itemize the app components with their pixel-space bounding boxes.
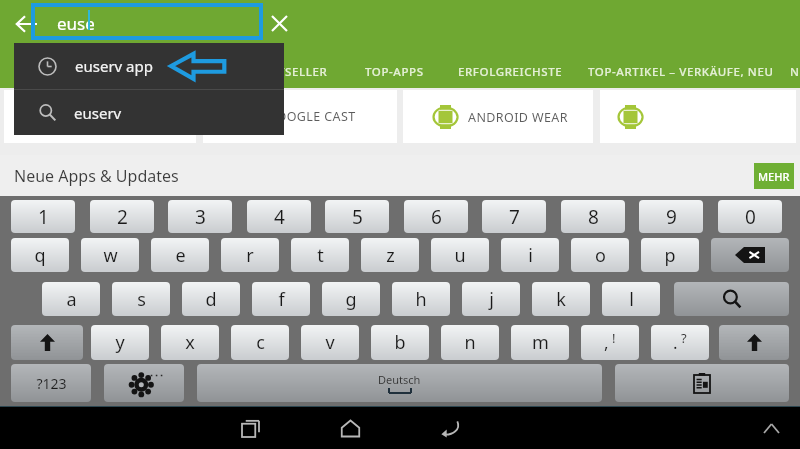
button[interactable]: d bbox=[182, 282, 240, 316]
button[interactable]: 1 bbox=[11, 200, 75, 233]
button[interactable]: 7 bbox=[482, 200, 546, 233]
staticText: ? bbox=[681, 329, 687, 347]
button[interactable]: 5 bbox=[325, 200, 389, 233]
staticText: y bbox=[115, 330, 125, 355]
button[interactable]: Clear search bbox=[262, 6, 296, 40]
button[interactable]: p bbox=[641, 238, 699, 272]
button[interactable]: euserv app bbox=[14, 43, 284, 89]
staticText: w bbox=[103, 243, 118, 268]
button[interactable]: 9 bbox=[639, 200, 703, 233]
button[interactable]: 8 bbox=[561, 200, 625, 233]
staticText: TOP-ARTIKEL – VERKÄUFE, NEU bbox=[588, 64, 774, 80]
staticText: u bbox=[454, 243, 466, 268]
staticText: TOP-APPS bbox=[365, 64, 424, 80]
button[interactable]: Back bbox=[6, 4, 46, 44]
button[interactable]: i bbox=[501, 238, 559, 272]
button[interactable]: b bbox=[371, 325, 429, 360]
staticText: h bbox=[415, 287, 427, 312]
button[interactable]: Backspace bbox=[711, 238, 789, 272]
staticText: 6 bbox=[431, 204, 442, 230]
staticText: o bbox=[595, 243, 606, 268]
staticText: v bbox=[325, 330, 335, 355]
button[interactable]: GOOGLE CAST bbox=[203, 90, 397, 143]
staticText: e bbox=[175, 243, 186, 268]
button[interactable]: Clipboard bbox=[615, 364, 789, 402]
button[interactable]: 6 bbox=[404, 200, 468, 233]
button[interactable]: euserv bbox=[14, 90, 284, 135]
button[interactable]: u bbox=[431, 238, 489, 272]
button[interactable]: f bbox=[252, 282, 310, 316]
staticText: t bbox=[317, 243, 324, 268]
button[interactable]: v bbox=[301, 325, 359, 360]
button[interactable]: k bbox=[532, 282, 590, 316]
staticText: ?123 bbox=[36, 374, 67, 393]
button[interactable]: Recents bbox=[230, 408, 270, 448]
button[interactable]: h bbox=[392, 282, 450, 316]
button[interactable]: e bbox=[151, 238, 209, 272]
button[interactable]: . bbox=[651, 325, 709, 360]
staticText: k bbox=[556, 287, 566, 312]
staticText: f bbox=[278, 287, 285, 312]
staticText: EHLUNGEN bbox=[28, 108, 99, 125]
button[interactable]: Back bbox=[430, 408, 470, 448]
staticText: N bbox=[790, 64, 800, 80]
button[interactable]: g bbox=[322, 282, 380, 316]
staticText: ANDROID WEAR bbox=[468, 109, 568, 126]
button[interactable]: s bbox=[112, 282, 170, 316]
staticText: m bbox=[532, 330, 549, 355]
button[interactable]: m bbox=[511, 325, 569, 360]
staticText: 7 bbox=[509, 204, 520, 230]
button[interactable]: ERFOLGREICHSTE bbox=[458, 55, 563, 88]
staticText: euserv app bbox=[75, 56, 153, 76]
button[interactable]: TOP-ARTIKEL – VERKÄUFE, NEU bbox=[588, 55, 774, 88]
button[interactable]: t bbox=[291, 238, 349, 272]
button[interactable]: Expand bbox=[756, 413, 786, 443]
button[interactable]: o bbox=[571, 238, 629, 272]
button[interactable]: TSELLER bbox=[278, 55, 328, 88]
button[interactable]: Shift bbox=[719, 325, 789, 360]
staticText: 8 bbox=[588, 204, 599, 230]
staticText: x bbox=[185, 330, 195, 355]
button[interactable]: 4 bbox=[247, 200, 311, 233]
button[interactable]: ANDROID WEAR bbox=[403, 90, 593, 143]
button[interactable]: MEHR bbox=[754, 163, 794, 189]
button[interactable]: l bbox=[602, 282, 660, 316]
button[interactable]: ?123 bbox=[11, 364, 91, 402]
button[interactable]: 2 bbox=[90, 200, 154, 233]
button[interactable]: 0 bbox=[718, 200, 782, 233]
button[interactable]: Keyboard settings bbox=[104, 364, 184, 402]
button[interactable]: , bbox=[581, 325, 639, 360]
button[interactable]: c bbox=[231, 325, 289, 360]
button[interactable]: N bbox=[790, 55, 800, 88]
staticText: l bbox=[629, 287, 634, 312]
staticText: i bbox=[528, 243, 533, 268]
staticText: GOOGLE CAST bbox=[267, 108, 356, 125]
button[interactable]: x bbox=[161, 325, 219, 360]
button[interactable]: Search bbox=[674, 282, 789, 316]
staticText: , bbox=[604, 331, 609, 354]
button[interactable]: n bbox=[441, 325, 499, 360]
button[interactable]: TOP-APPS bbox=[365, 55, 424, 88]
button[interactable]: 3 bbox=[168, 200, 232, 233]
button[interactable]: j bbox=[462, 282, 520, 316]
button[interactable] bbox=[600, 90, 796, 143]
staticText: 0 bbox=[745, 204, 756, 230]
button[interactable]: r bbox=[221, 238, 279, 272]
staticText: 4 bbox=[274, 204, 285, 230]
staticText: 2 bbox=[117, 204, 128, 230]
button[interactable]: y bbox=[91, 325, 149, 360]
staticText: Deutsch bbox=[378, 372, 421, 387]
staticText: d bbox=[205, 287, 217, 312]
button[interactable]: w bbox=[81, 238, 139, 272]
button[interactable]: a bbox=[42, 282, 100, 316]
button[interactable]: Space bbox=[197, 364, 602, 402]
button[interactable]: Home bbox=[330, 408, 370, 448]
staticText: r bbox=[246, 243, 254, 268]
button[interactable]: q bbox=[11, 238, 69, 272]
button[interactable]: Shift bbox=[11, 325, 83, 360]
staticText: p bbox=[664, 243, 676, 268]
button[interactable]: EHLUNGEN bbox=[4, 90, 196, 143]
staticText: ERFOLGREICHSTE bbox=[458, 64, 563, 80]
button[interactable]: z bbox=[361, 238, 419, 272]
staticText: 1 bbox=[38, 204, 49, 230]
